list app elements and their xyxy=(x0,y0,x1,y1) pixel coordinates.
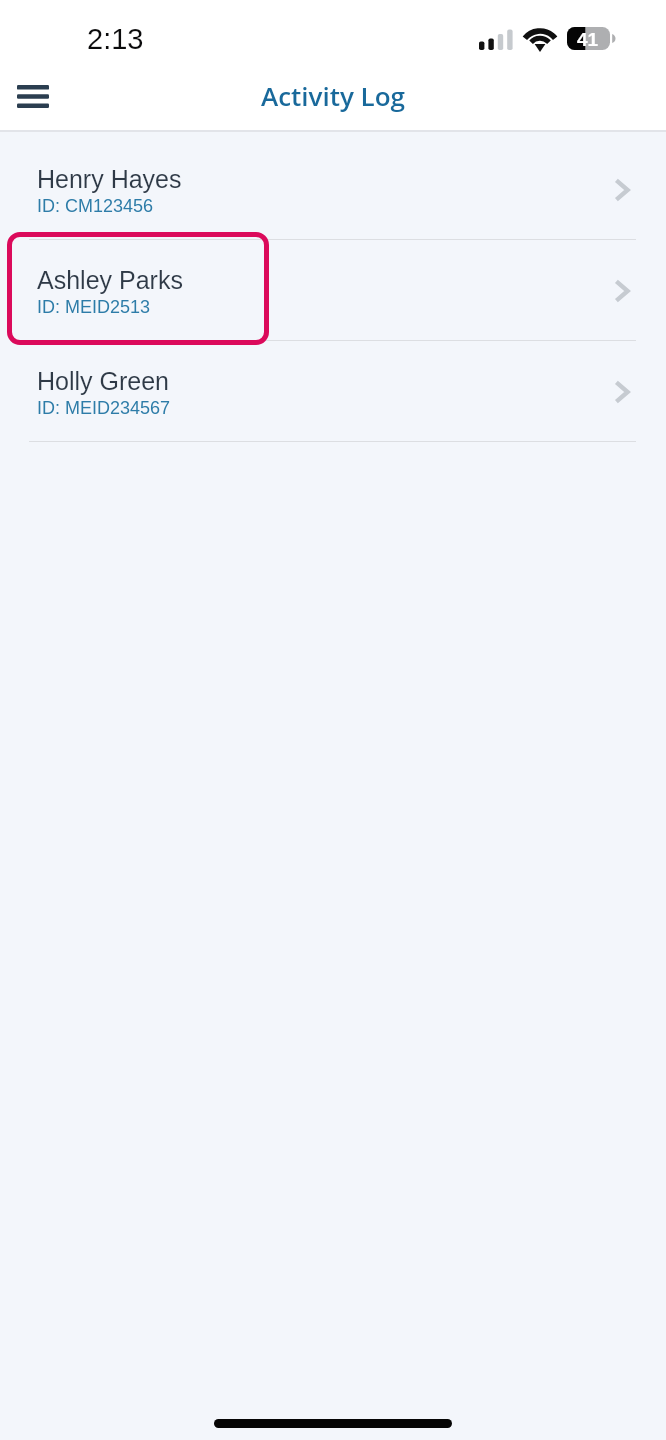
staticText: ID: MEID234567 xyxy=(37,398,171,418)
staticText: ID: CM123456 xyxy=(37,196,154,216)
staticText: 41 xyxy=(577,29,599,50)
staticText: Activity Log xyxy=(0,78,666,113)
button[interactable]: Ashley Parks xyxy=(0,240,666,340)
staticText: Holly Green xyxy=(37,367,169,395)
other: Wi-Fi connected xyxy=(525,27,555,50)
staticText: Henry Hayes xyxy=(37,165,182,193)
button[interactable]: Open navigation menu xyxy=(4,72,62,120)
button[interactable]: Holly Green xyxy=(0,341,666,441)
staticText: ID: MEID2513 xyxy=(37,297,151,317)
other: Cellular signal xyxy=(479,28,514,50)
other: Battery 41 percent xyxy=(567,27,610,50)
staticText: Ashley Parks xyxy=(37,266,183,294)
button[interactable]: Henry Hayes xyxy=(0,139,666,239)
staticText: 2:13 xyxy=(87,23,144,55)
